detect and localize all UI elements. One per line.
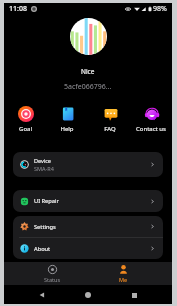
button[interactable]: Status bbox=[17, 262, 88, 285]
button[interactable]: Home bbox=[80, 287, 96, 303]
button[interactable]: Settings bbox=[13, 216, 163, 237]
staticText: 98% bbox=[153, 4, 167, 14]
staticText: Me bbox=[119, 276, 128, 283]
button[interactable]: Recents bbox=[126, 287, 142, 303]
staticText: SMA-R4 bbox=[34, 165, 54, 172]
staticText: UI Repair bbox=[34, 197, 59, 205]
button[interactable]: UI Repair bbox=[13, 190, 163, 212]
staticText: Help bbox=[60, 125, 74, 133]
button[interactable]: Device bbox=[13, 152, 163, 177]
button[interactable]: FAQ bbox=[89, 105, 131, 133]
button[interactable]: Goal bbox=[4, 105, 46, 133]
staticText: Contact us bbox=[136, 125, 166, 133]
button[interactable]: Help bbox=[46, 105, 88, 133]
staticText: About bbox=[34, 245, 51, 253]
staticText: 5acfe066796... bbox=[64, 82, 112, 92]
button[interactable]: Back bbox=[34, 287, 50, 303]
button[interactable]: Me bbox=[88, 262, 159, 285]
staticText: Goal bbox=[19, 125, 32, 133]
staticText: 11:08 bbox=[9, 4, 27, 14]
staticText: Status bbox=[44, 276, 61, 283]
button[interactable]: About bbox=[13, 238, 163, 259]
button[interactable]: Contact us bbox=[130, 105, 172, 133]
staticText: Device bbox=[34, 157, 51, 164]
staticText: Settings bbox=[34, 223, 56, 231]
staticText: FAQ bbox=[104, 125, 116, 133]
staticText: Nice bbox=[81, 67, 95, 76]
